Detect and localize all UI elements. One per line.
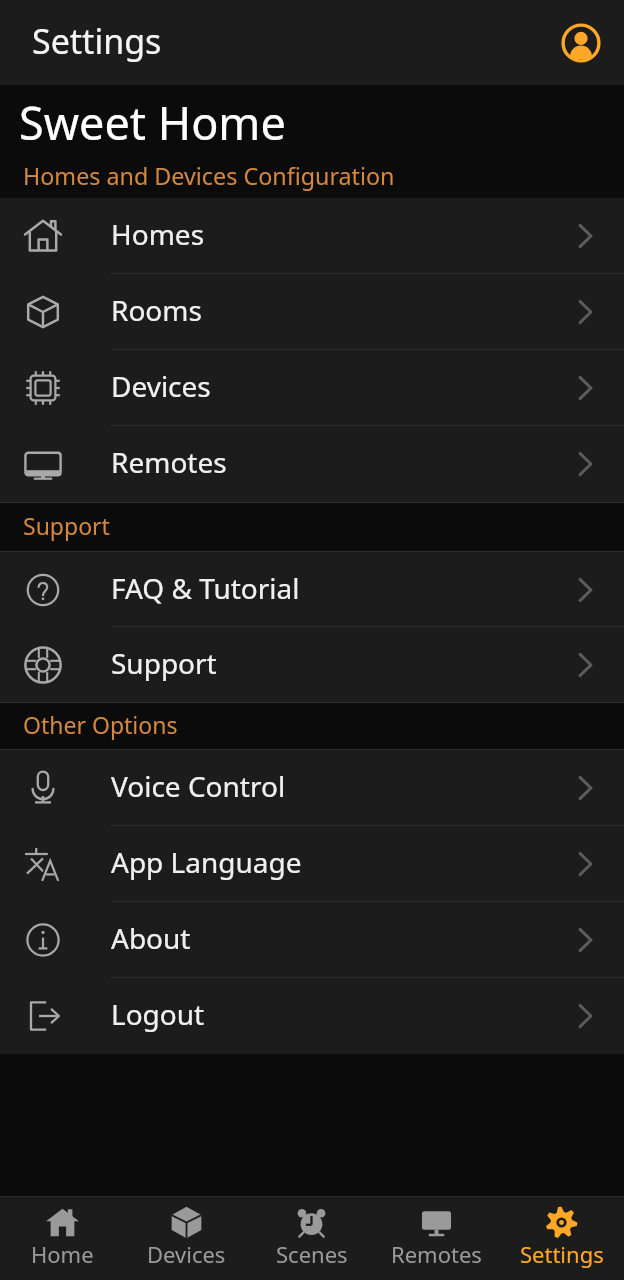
button[interactable]: Scenes	[249, 1197, 374, 1280]
button[interactable]: App Language	[0, 826, 624, 902]
staticText: Settings	[32, 18, 162, 64]
button[interactable]: Devices	[124, 1197, 249, 1280]
button[interactable]: About	[0, 902, 624, 978]
staticText: Scenes	[276, 1239, 348, 1269]
staticText: Homes	[111, 215, 205, 253]
button[interactable]: Devices	[0, 350, 624, 426]
staticText: Other Options	[23, 709, 178, 740]
staticText: Logout	[111, 995, 205, 1033]
staticText: Rooms	[111, 291, 202, 329]
staticText: Support	[23, 510, 110, 541]
button[interactable]: Remotes	[0, 426, 624, 502]
button[interactable]: Voice Control	[0, 750, 624, 826]
staticText: Homes and Devices Configuration	[23, 160, 395, 192]
button[interactable]: Support	[0, 627, 624, 702]
staticText: Support	[111, 644, 217, 682]
staticText: Sweet Home	[19, 92, 286, 153]
button[interactable]: Settings	[499, 1197, 624, 1280]
staticText: About	[111, 919, 191, 957]
staticText: App Language	[111, 843, 302, 881]
staticText: Home	[31, 1239, 94, 1269]
staticText: Settings	[520, 1239, 604, 1269]
staticText: Devices	[147, 1239, 226, 1269]
button[interactable]: Logout	[0, 978, 624, 1054]
staticText: Remotes	[391, 1239, 482, 1269]
staticText: Remotes	[111, 443, 227, 481]
staticText: Voice Control	[111, 767, 286, 805]
staticText: Devices	[111, 367, 211, 405]
button[interactable]: Account	[555, 17, 607, 69]
staticText: FAQ & Tutorial	[111, 569, 300, 607]
button[interactable]: Remotes	[374, 1197, 499, 1280]
button[interactable]: Homes	[0, 198, 624, 274]
button[interactable]: Rooms	[0, 274, 624, 350]
button[interactable]: Home	[0, 1197, 124, 1280]
button[interactable]: FAQ & Tutorial	[0, 552, 624, 627]
